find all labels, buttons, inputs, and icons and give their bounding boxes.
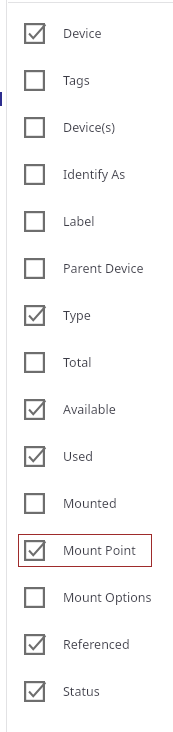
staticText: Mounted — [63, 495, 117, 512]
button[interactable]: Device(s) — [0, 104, 173, 151]
staticText: Label — [63, 213, 95, 230]
button[interactable]: Type — [0, 292, 173, 339]
button[interactable]: Available — [0, 386, 173, 433]
button[interactable]: Used — [0, 433, 173, 480]
staticText: Mount Point — [63, 542, 136, 559]
staticText: Status — [63, 683, 100, 700]
staticText: Device(s) — [63, 119, 116, 136]
button[interactable]: Label — [0, 198, 173, 245]
button[interactable]: Referenced — [0, 621, 173, 668]
button[interactable]: Mount Point — [0, 527, 173, 574]
staticText: Mount Options — [63, 589, 152, 606]
button[interactable]: Device — [0, 10, 173, 57]
staticText: Parent Device — [63, 260, 144, 277]
staticText: Device — [63, 25, 102, 42]
staticText: Referenced — [63, 636, 130, 653]
button[interactable]: Identify As — [0, 151, 173, 198]
button[interactable]: Status — [0, 668, 173, 715]
button[interactable]: Total — [0, 339, 173, 386]
staticText: Identify As — [63, 166, 126, 183]
staticText: Total — [63, 354, 92, 371]
staticText: Tags — [63, 72, 90, 89]
staticText: Available — [63, 401, 116, 418]
button[interactable]: Tags — [0, 57, 173, 104]
staticText: Type — [63, 307, 91, 324]
button[interactable]: Mount Options — [0, 574, 173, 621]
button[interactable]: Mounted — [0, 480, 173, 527]
button[interactable]: Parent Device — [0, 245, 173, 292]
staticText: Used — [63, 448, 93, 465]
